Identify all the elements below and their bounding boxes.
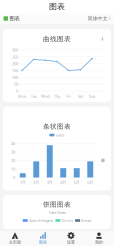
staticText: 简体中文	[87, 15, 107, 22]
button[interactable]: 我的	[86, 231, 112, 245]
staticText: 0	[16, 88, 18, 94]
staticText: 10	[11, 166, 15, 172]
button[interactable]: 主页面	[2, 231, 28, 245]
button[interactable]: 图表	[30, 231, 56, 245]
staticText: 2月	[33, 179, 39, 185]
staticText: Fri	[66, 93, 71, 99]
staticText: 图表	[49, 2, 65, 11]
staticText: 250	[12, 54, 18, 59]
staticText: 6月	[87, 179, 93, 185]
staticText: 我的	[95, 240, 103, 245]
staticText: 设置	[67, 240, 75, 245]
staticText: 40	[11, 141, 15, 146]
staticText: 300	[12, 47, 18, 53]
staticText: 饼图图表	[43, 200, 71, 209]
button[interactable]: 图表	[3, 15, 20, 22]
staticText: 条状图表	[43, 122, 71, 131]
staticText: Thu	[54, 93, 60, 99]
button[interactable]: Download chart	[99, 35, 106, 43]
staticText: Tue	[31, 93, 37, 99]
staticText: 5月	[74, 179, 80, 185]
button[interactable]: 简体中文	[87, 15, 110, 22]
staticText: Wed	[41, 93, 49, 99]
staticText: Sat	[78, 93, 83, 99]
staticText: 50	[14, 81, 18, 87]
staticText: 100	[12, 75, 18, 80]
staticText: sales	[56, 132, 65, 138]
staticText: 200	[12, 61, 18, 66]
staticText: 3月	[47, 179, 53, 185]
staticText: 曲线图表	[43, 35, 71, 43]
staticText: 4月	[60, 179, 66, 185]
staticText: Search Engine	[29, 218, 53, 223]
staticText: 30	[11, 149, 15, 155]
staticText: 图表	[10, 15, 20, 22]
staticText: 图表	[39, 240, 47, 245]
staticText: 150	[12, 68, 18, 73]
staticText: 0	[13, 175, 15, 180]
staticText: 20	[11, 158, 15, 163]
staticText: Sun	[89, 93, 95, 99]
staticText: 1月	[20, 179, 26, 185]
staticText: 主页面	[9, 240, 21, 245]
staticText: Direct	[62, 218, 73, 223]
button[interactable]: 设置	[58, 231, 84, 245]
staticText: Email	[81, 218, 91, 223]
staticText: Mon	[18, 93, 26, 99]
staticText: Fake Data	[48, 210, 65, 215]
